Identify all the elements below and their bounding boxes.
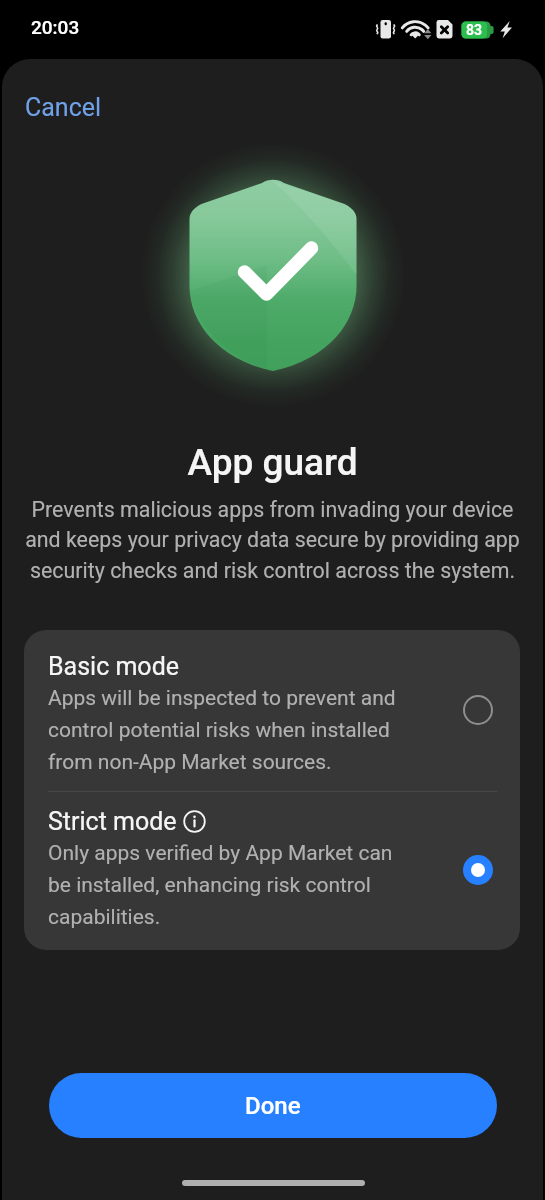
staticText: 83 xyxy=(466,22,483,38)
staticText: Strict mode xyxy=(48,807,177,836)
staticText: Prevents malicious apps from invading yo… xyxy=(22,497,523,583)
other: Info xyxy=(183,810,206,833)
button[interactable]: Cancel xyxy=(22,90,105,125)
button[interactable]: Strict mode xyxy=(24,792,520,950)
button[interactable]: Basic mode xyxy=(24,630,520,791)
staticText: Only apps verified by App Market can be … xyxy=(48,841,400,929)
staticText: 20:03 xyxy=(31,16,80,38)
button[interactable]: Done xyxy=(49,1073,497,1138)
staticText: Cancel xyxy=(25,93,102,122)
staticText: Apps will be inspected to prevent and co… xyxy=(48,686,400,774)
staticText: Basic mode xyxy=(48,652,179,681)
staticText: Done xyxy=(245,1092,301,1120)
staticText: App guard xyxy=(2,441,543,484)
